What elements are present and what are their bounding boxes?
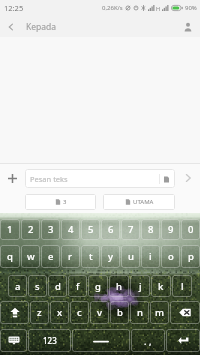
button[interactable]: 5: [81, 219, 100, 240]
button[interactable]: z: [30, 301, 49, 324]
staticText: 3: [48, 223, 54, 236]
button[interactable]: m: [150, 301, 169, 324]
staticText: p: [188, 250, 194, 263]
staticText: 123: [43, 335, 57, 346]
button[interactable]: r: [61, 245, 80, 268]
staticText: v: [97, 306, 103, 319]
staticText: 90%: [185, 4, 197, 12]
staticText: 0,26K/s: [102, 4, 123, 12]
staticText: 7: [128, 223, 134, 236]
button[interactable]: j: [130, 275, 150, 297]
button[interactable]: Backspace: [170, 301, 200, 324]
staticText: .: [144, 335, 147, 347]
button[interactable]: Send: [175, 164, 200, 192]
staticText: 1: [7, 223, 13, 236]
button[interactable]: UTAMA: [103, 194, 175, 210]
staticText: z: [37, 306, 42, 319]
staticText: UTAMA: [133, 198, 154, 206]
button[interactable]: b: [110, 301, 129, 324]
staticText: 3: [63, 198, 67, 206]
button[interactable]: o: [161, 245, 180, 268]
staticText: Kepada: [26, 21, 57, 33]
staticText: H: [156, 5, 161, 12]
staticText: m: [155, 306, 164, 319]
button[interactable]: g: [88, 275, 108, 297]
button[interactable]: Pesan teks: [25, 169, 175, 188]
button[interactable]: v: [90, 301, 109, 324]
staticText: l: [181, 280, 184, 293]
staticText: 8: [148, 223, 154, 236]
button[interactable]: Comma: [131, 329, 165, 352]
staticText: 9: [168, 223, 174, 236]
button[interactable]: 8: [141, 219, 160, 240]
button[interactable]: s: [28, 275, 47, 297]
staticText: b: [117, 306, 123, 319]
staticText: 12:25: [4, 3, 24, 13]
button[interactable]: 4: [61, 219, 80, 240]
staticText: q: [7, 250, 13, 263]
staticText: j: [139, 280, 142, 293]
button[interactable]: 1: [0, 219, 20, 240]
staticText: 2: [28, 223, 34, 236]
staticText: s: [35, 280, 40, 293]
button[interactable]: 0: [181, 219, 200, 240]
staticText: x: [57, 306, 63, 319]
staticText: i: [149, 250, 152, 263]
button[interactable]: e: [41, 245, 60, 268]
staticText: h: [116, 280, 122, 293]
button[interactable]: Add attachment: [0, 164, 25, 192]
button[interactable]: d: [48, 275, 67, 297]
staticText: y: [108, 250, 114, 263]
staticText: 4: [68, 223, 74, 236]
staticText: r: [68, 250, 73, 263]
button[interactable]: x: [50, 301, 69, 324]
button[interactable]: q: [0, 245, 20, 268]
staticText: u: [128, 250, 134, 263]
button[interactable]: k: [151, 275, 171, 297]
staticText: Pesan teks: [30, 174, 68, 184]
staticText: g: [95, 280, 101, 293]
button[interactable]: Keyboard settings: [0, 329, 27, 352]
staticText: k: [158, 280, 164, 293]
button[interactable]: Space: [72, 329, 130, 352]
staticText: n: [137, 306, 143, 319]
button[interactable]: 9: [161, 219, 180, 240]
button[interactable]: Numbers: [28, 329, 71, 352]
button[interactable]: 3: [25, 194, 96, 210]
staticText: e: [48, 250, 54, 263]
staticText: a: [15, 280, 21, 293]
staticText: 0: [188, 223, 194, 236]
button[interactable]: i: [141, 245, 160, 268]
button[interactable]: f: [68, 275, 87, 297]
button[interactable]: a: [8, 275, 27, 297]
button[interactable]: h: [109, 275, 129, 297]
staticText: t: [89, 250, 93, 263]
staticText: d: [55, 280, 61, 293]
button[interactable]: 2: [21, 219, 40, 240]
staticText: 5: [88, 223, 94, 236]
button[interactable]: y: [101, 245, 120, 268]
button[interactable]: w: [21, 245, 40, 268]
button[interactable]: 7: [121, 219, 140, 240]
staticText: w: [27, 250, 35, 263]
staticText: f: [76, 280, 80, 293]
staticText: c: [77, 306, 82, 319]
button[interactable]: Shift: [0, 301, 29, 324]
button[interactable]: Contacts: [176, 16, 200, 37]
staticText: o: [168, 250, 174, 263]
button[interactable]: p: [181, 245, 200, 268]
button[interactable]: l: [172, 275, 192, 297]
button[interactable]: n: [130, 301, 149, 324]
button[interactable]: t: [81, 245, 100, 268]
button[interactable]: 3: [41, 219, 60, 240]
button[interactable]: Back: [0, 16, 21, 37]
button[interactable]: 6: [101, 219, 120, 240]
button[interactable]: u: [121, 245, 140, 268]
staticText: ,: [149, 335, 152, 347]
button[interactable]: Enter: [166, 329, 200, 352]
button[interactable]: c: [70, 301, 89, 324]
staticText: 6: [108, 223, 114, 236]
